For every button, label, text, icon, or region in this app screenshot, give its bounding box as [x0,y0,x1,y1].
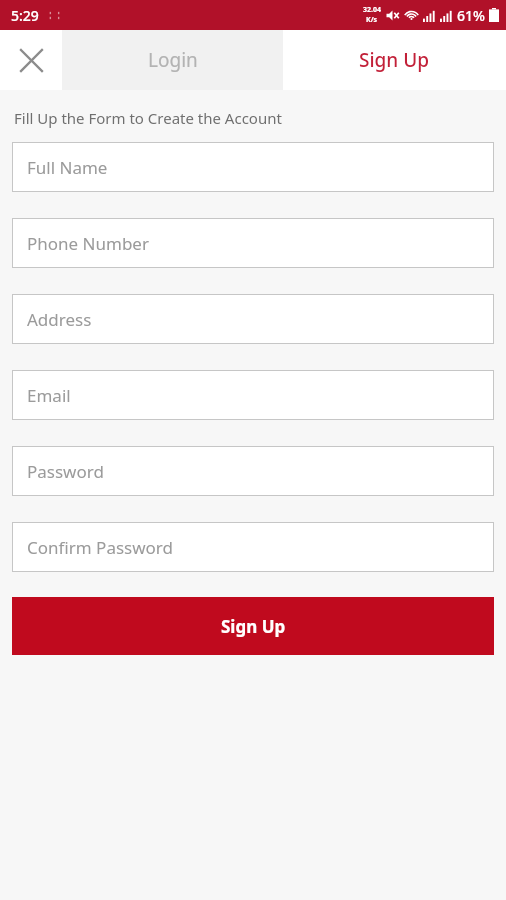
staticText: Sign Up [221,615,286,638]
button[interactable]: Full Name [12,142,494,192]
staticText: Address [27,308,92,331]
button[interactable]: Password [12,446,494,496]
button[interactable]: Close [0,30,62,90]
staticText: Phone Number [27,232,149,255]
button[interactable]: Email [12,370,494,420]
staticText: Fill Up the Form to Create the Account [14,108,282,128]
staticText: Full Name [27,156,108,179]
button[interactable]: Confirm Password [12,522,494,572]
staticText: Sign Up [359,47,430,73]
button[interactable]: Address [12,294,494,344]
staticText: Email [27,384,71,407]
staticText: 32.04 [363,5,381,15]
staticText: 61% [457,6,485,25]
button[interactable]: Sign Up [12,597,494,655]
button[interactable]: Phone Number [12,218,494,268]
staticText: Password [27,460,104,483]
staticText: K/s [366,15,378,25]
staticText: Login [148,47,198,73]
staticText: Confirm Password [27,536,173,559]
staticText: 5:29 [11,6,39,25]
button[interactable]: Sign Up [283,30,506,90]
button[interactable]: Login [62,30,283,90]
